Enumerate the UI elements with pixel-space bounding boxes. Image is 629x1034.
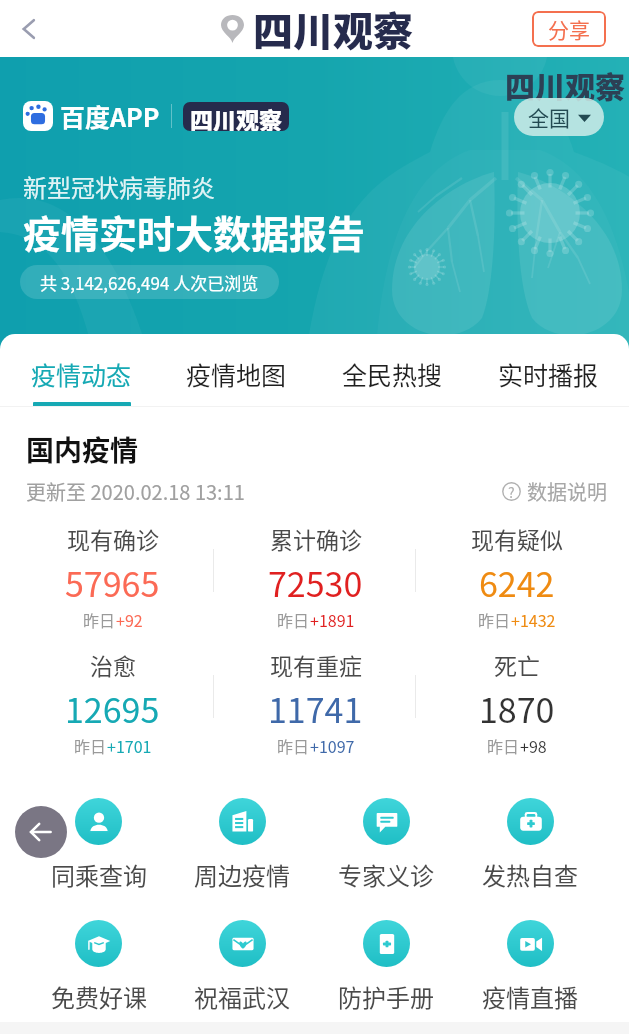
staticText: 全民热搜 [342, 356, 443, 392]
staticText: 疫情实时大数据报告 [23, 204, 366, 259]
staticText: +1701 [107, 734, 152, 757]
staticText: 昨日 [277, 734, 310, 757]
button[interactable]: 返回 [15, 806, 67, 858]
button[interactable]: 实时播报 [470, 334, 626, 407]
staticText: 昨日 [487, 734, 520, 757]
button[interactable]: 同乘查询 [27, 798, 170, 892]
staticText: 昨日 [83, 608, 116, 631]
staticText: 累计确诊 [270, 522, 362, 555]
staticText: 疫情直播 [482, 979, 578, 1014]
button[interactable]: 返回 [0, 0, 57, 57]
button[interactable]: 防护手册 [314, 920, 458, 1014]
button[interactable]: 疫情直播 [458, 920, 602, 1014]
staticText: 6242 [479, 558, 555, 607]
staticText: 祝福武汉 [194, 979, 290, 1014]
button[interactable]: 分享 [532, 11, 606, 47]
staticText: 数据说明 [527, 477, 607, 506]
staticText: 四川观察 [190, 102, 282, 131]
staticText: 现有疑似 [471, 522, 563, 555]
staticText: 百度APP [60, 98, 160, 134]
staticText: 周边疫情 [194, 857, 290, 892]
staticText: 57965 [65, 558, 160, 607]
staticText: 四川观察 [253, 0, 413, 57]
staticText: 11741 [268, 684, 363, 733]
button[interactable]: 疫情动态 [4, 334, 159, 407]
staticText: 发热自查 [482, 857, 578, 892]
button[interactable]: 全民热搜 [314, 334, 470, 407]
staticText: +1891 [310, 608, 355, 631]
staticText: +1432 [511, 608, 556, 631]
staticText: 死亡 [494, 648, 540, 681]
staticText: 专家义诊 [338, 857, 434, 892]
staticText: 国内疫情 [26, 429, 139, 470]
staticText: +92 [116, 608, 143, 631]
button[interactable]: 周边疫情 [170, 798, 314, 892]
staticText: 12695 [65, 684, 160, 733]
staticText: 更新至 2020.02.18 13:11 [26, 477, 245, 506]
staticText: ? [508, 482, 515, 501]
staticText: 昨日 [74, 734, 107, 757]
staticText: 实时播报 [498, 356, 599, 392]
staticText: +1097 [310, 734, 355, 757]
button[interactable]: 祝福武汉 [170, 920, 314, 1014]
staticText: 四川观察 [505, 63, 625, 106]
staticText: 防护手册 [338, 979, 434, 1014]
staticText: 分享 [548, 14, 590, 44]
staticText: 共 3,142,626,494 人次已浏览 [40, 270, 259, 295]
staticText: 治愈 [90, 648, 136, 681]
button[interactable]: ? [502, 477, 607, 506]
staticText: 新型冠状病毒肺炎 [23, 169, 215, 204]
staticText: 1870 [479, 684, 555, 733]
staticText: 昨日 [277, 608, 310, 631]
button[interactable]: 发热自查 [458, 798, 602, 892]
staticText: 免费好课 [51, 979, 147, 1014]
staticText: 同乘查询 [51, 857, 147, 892]
staticText: 昨日 [478, 608, 511, 631]
button[interactable]: 疫情地图 [159, 334, 314, 407]
button[interactable]: 全国 [514, 98, 604, 136]
staticText: +98 [520, 734, 547, 757]
button[interactable]: 专家义诊 [314, 798, 458, 892]
staticText: 现有确诊 [67, 522, 159, 555]
staticText: 现有重症 [270, 648, 362, 681]
staticText: 72530 [268, 558, 363, 607]
staticText: 疫情动态 [31, 356, 132, 392]
button[interactable]: 免费好课 [27, 920, 170, 1014]
staticText: 疫情地图 [186, 356, 287, 392]
staticText: 全国 [528, 102, 570, 132]
